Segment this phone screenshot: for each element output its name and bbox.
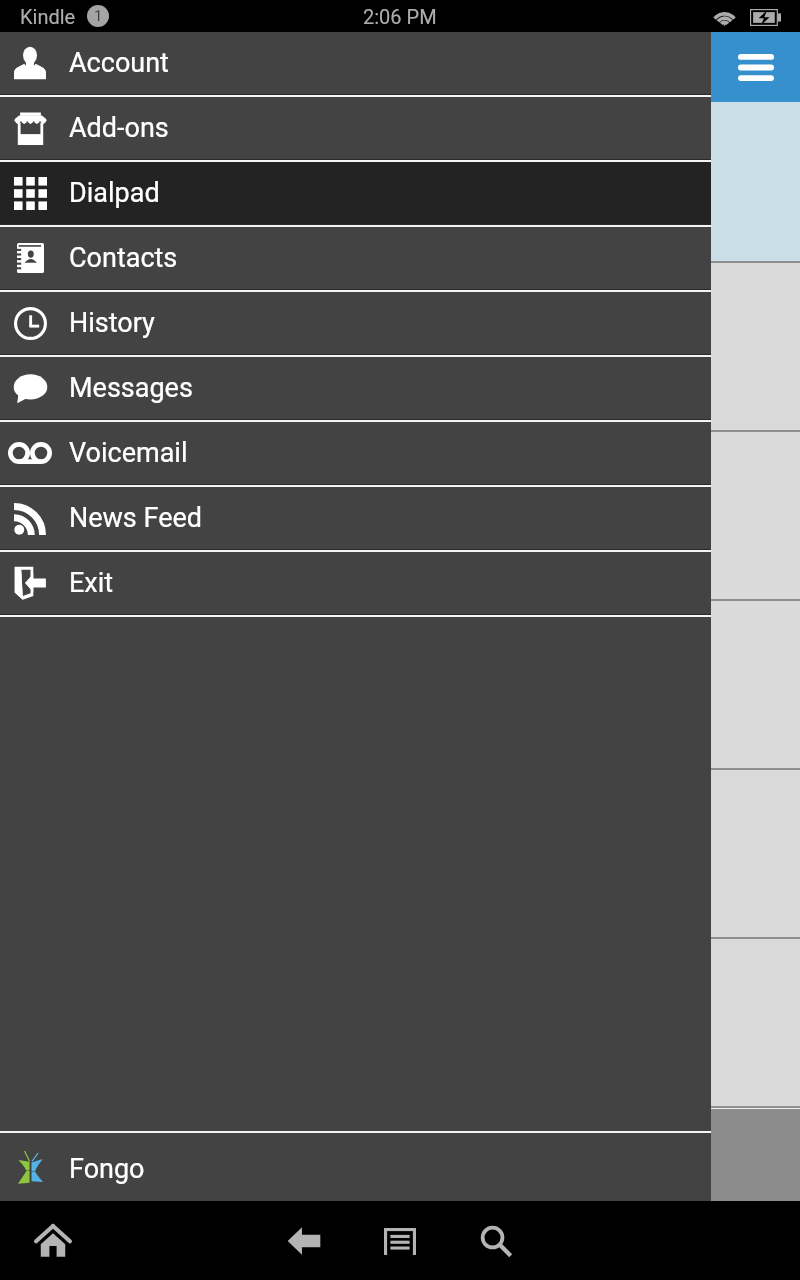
button[interactable]: Search bbox=[466, 1218, 526, 1264]
staticText: Fongo bbox=[69, 1153, 145, 1185]
staticText: Exit bbox=[69, 567, 114, 599]
staticText: Contacts bbox=[69, 242, 178, 274]
button[interactable]: Dialpad bbox=[0, 162, 711, 224]
staticText: Messages bbox=[69, 372, 193, 404]
button[interactable]: Recent apps bbox=[370, 1218, 430, 1264]
staticText: History bbox=[69, 307, 155, 339]
button[interactable]: Messages bbox=[0, 357, 711, 419]
button[interactable]: Voicemail bbox=[0, 422, 711, 484]
button[interactable]: News Feed bbox=[0, 487, 711, 549]
staticText: 2:06 PM bbox=[363, 5, 437, 28]
button[interactable]: Add-ons bbox=[0, 97, 711, 159]
button[interactable]: History bbox=[0, 292, 711, 354]
button[interactable]: Account bbox=[0, 32, 711, 94]
button[interactable]: Fongo bbox=[0, 1133, 711, 1201]
button[interactable]: Exit bbox=[0, 552, 711, 614]
staticText: Voicemail bbox=[69, 437, 188, 469]
button[interactable]: Open navigation drawer bbox=[738, 54, 774, 81]
staticText: News Feed bbox=[69, 502, 203, 534]
button[interactable]: Back bbox=[274, 1218, 334, 1264]
button[interactable]: Home bbox=[23, 1218, 83, 1264]
staticText: Add-ons bbox=[69, 112, 169, 144]
button[interactable]: Contacts bbox=[0, 227, 711, 289]
staticText: Account bbox=[69, 47, 169, 79]
staticText: 1 bbox=[94, 7, 103, 25]
staticText: Dialpad bbox=[69, 177, 160, 209]
staticText: Kindle bbox=[20, 5, 76, 28]
